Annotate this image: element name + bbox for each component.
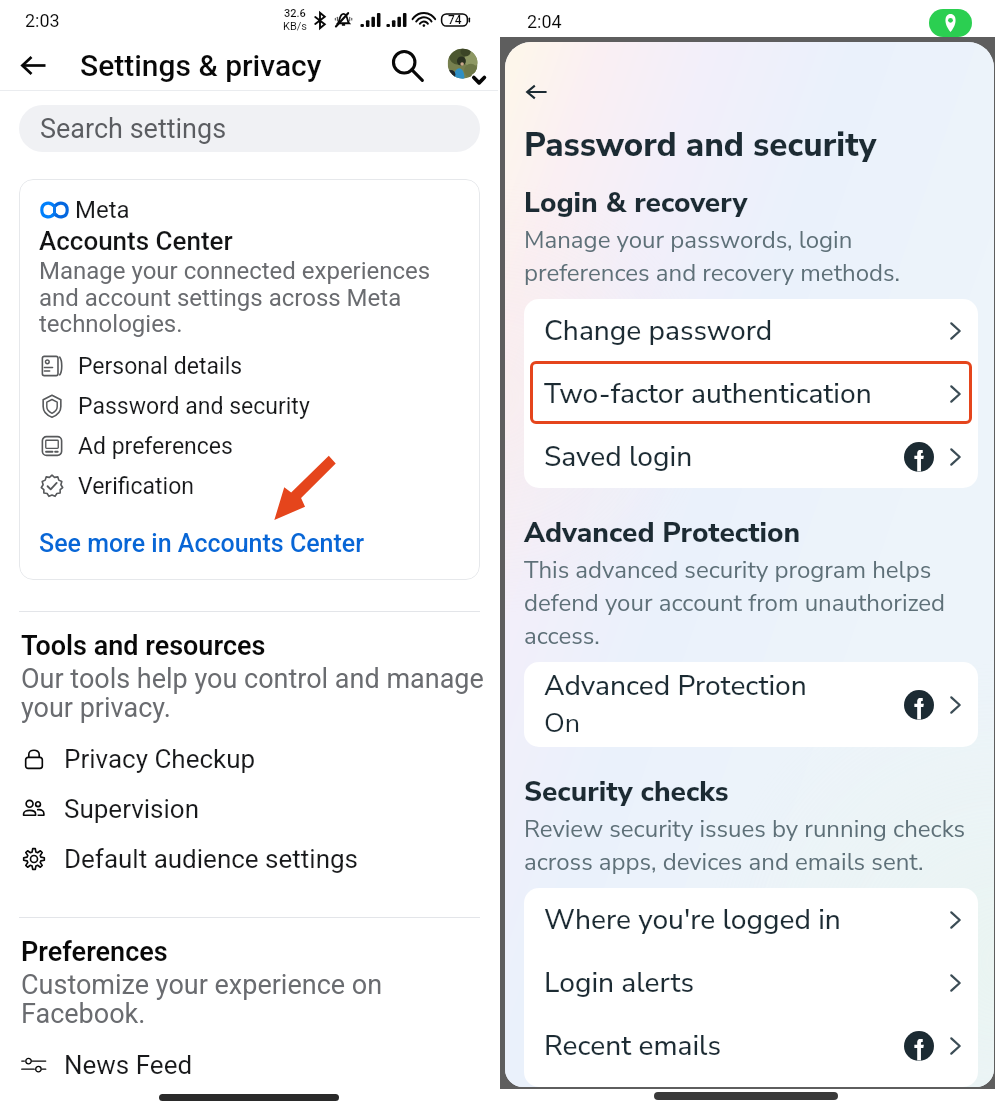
staticText: Default audience settings	[64, 844, 359, 874]
staticText: Login & recovery	[524, 184, 748, 222]
staticText: Manage your passwords, login preferences…	[524, 224, 980, 290]
button[interactable]: News Feed	[0, 1040, 498, 1090]
staticText: 2:04	[527, 11, 562, 32]
staticText: Password and security	[78, 393, 310, 420]
staticText: 32.6	[284, 7, 306, 20]
button[interactable]: Saved login	[524, 425, 978, 488]
staticText: Two-factor authentication	[544, 375, 948, 413]
staticText: Advanced Protection	[524, 514, 801, 552]
staticText: Verification	[78, 473, 194, 500]
button[interactable]: Back	[505, 70, 563, 114]
button[interactable]: Default audience settings	[0, 834, 498, 884]
staticText: Where you're logged in	[544, 901, 948, 939]
staticText: This advanced security program helps def…	[524, 554, 980, 653]
staticText: Security checks	[524, 773, 729, 811]
staticText: Settings & privacy	[80, 48, 378, 83]
staticText: Password and security	[524, 123, 877, 168]
button[interactable]: Where you're logged in	[524, 888, 978, 951]
staticText: News Feed	[64, 1050, 193, 1080]
button[interactable]: Verification	[39, 466, 472, 506]
staticText: 2:03	[25, 10, 60, 31]
staticText: Recent emails	[544, 1027, 904, 1065]
staticText: Search settings	[40, 113, 227, 145]
button[interactable]: Password and security	[39, 386, 472, 426]
button[interactable]: Search settings	[19, 105, 480, 152]
staticText: Change password	[544, 312, 948, 350]
button[interactable]: Change password	[524, 299, 978, 362]
button[interactable]: Ad preferences	[39, 426, 472, 466]
button[interactable]: Login alerts	[524, 951, 978, 1014]
staticText: KB/s	[283, 20, 307, 33]
button[interactable]: Supervision	[0, 784, 498, 834]
button[interactable]: Search	[378, 40, 436, 90]
staticText: Customize your experience on Facebook.	[21, 969, 490, 1030]
button[interactable]: Recent emails	[524, 1014, 978, 1077]
staticText: Our tools help you control and manage yo…	[21, 663, 490, 724]
button[interactable]: Privacy Checkup	[0, 734, 498, 784]
button[interactable]: Advanced Protection	[524, 662, 978, 747]
staticText: See more in Accounts Center	[39, 529, 365, 558]
staticText: Supervision	[64, 794, 200, 824]
button[interactable]: See more in Accounts Center	[39, 529, 365, 558]
staticText: Saved login	[544, 438, 904, 476]
staticText: On	[544, 705, 581, 742]
button[interactable]: Your profile	[436, 40, 498, 90]
staticText: Manage your connected experiences and ac…	[39, 257, 472, 337]
staticText: Ad preferences	[78, 433, 233, 460]
staticText: Login alerts	[544, 964, 948, 1002]
staticText: Preferences	[21, 936, 168, 968]
staticText: 74	[448, 13, 462, 27]
button[interactable]: Personal details	[39, 346, 472, 386]
staticText: Personal details	[78, 353, 243, 380]
staticText: Meta	[75, 196, 130, 224]
staticText: Advanced Protection	[544, 667, 807, 705]
staticText: Accounts Center	[39, 226, 233, 256]
button[interactable]: Two-factor authentication	[524, 362, 978, 425]
staticText: Review security issues by running checks…	[524, 813, 980, 879]
staticText: Privacy Checkup	[64, 744, 256, 774]
button[interactable]: Back	[0, 40, 80, 90]
staticText: Tools and resources	[21, 630, 266, 662]
